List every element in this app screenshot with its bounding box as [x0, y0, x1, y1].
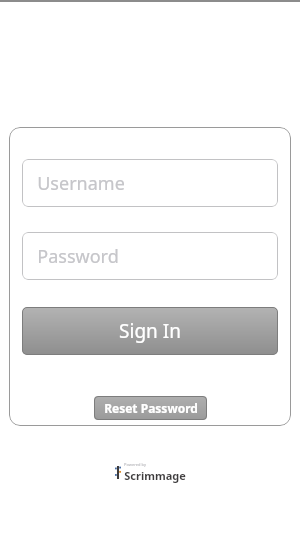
button[interactable]: Sign In: [22, 307, 278, 355]
button[interactable]: Username: [22, 159, 278, 207]
button[interactable]: Reset Password: [94, 396, 207, 420]
staticText: Reset Password: [104, 400, 198, 416]
staticText: Password: [37, 244, 119, 269]
button[interactable]: Password: [22, 232, 278, 280]
staticText: Username: [37, 171, 125, 196]
staticText: Scrimmage: [124, 468, 186, 483]
staticText: Sign In: [119, 318, 181, 344]
staticText: Powered by: [124, 462, 146, 467]
other: Scrimmage logo: [115, 466, 121, 479]
